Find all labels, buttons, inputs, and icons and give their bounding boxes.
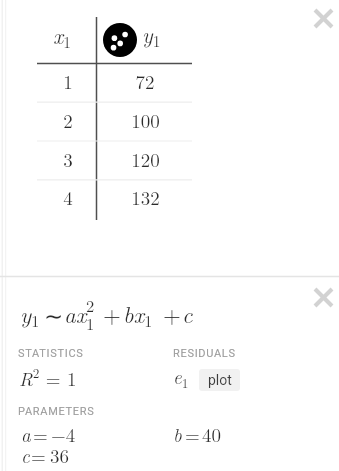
staticText: 72 (135, 68, 155, 95)
staticText: = (31, 442, 46, 469)
staticText: 120 (131, 146, 160, 173)
button[interactable]: plot (199, 369, 240, 391)
staticText: plot (208, 372, 232, 388)
button[interactable]: 4 (38, 178, 98, 216)
button[interactable]: 120 (97, 140, 193, 178)
button[interactable]: 100 (97, 101, 193, 139)
staticText: 2 (63, 107, 73, 134)
staticText: −4 (51, 421, 76, 448)
staticText: ∼ (44, 303, 64, 330)
staticText: bx1 (123, 297, 153, 332)
staticText: 1 (86, 311, 95, 334)
staticText: y1 (20, 297, 40, 332)
staticText: b (173, 421, 182, 448)
button[interactable]: 1 (38, 62, 98, 100)
button[interactable]: 132 (97, 178, 193, 216)
staticText: 40 (202, 421, 222, 448)
button[interactable]: 2 (38, 101, 98, 139)
button[interactable]: Close (307, 281, 339, 313)
staticText: = (33, 421, 48, 448)
button[interactable]: Point style for y1 (97, 18, 193, 63)
button[interactable]: x1 (37, 18, 96, 63)
staticText: 1 (63, 68, 73, 95)
staticText: = (185, 421, 200, 448)
staticText: c (182, 297, 193, 330)
staticText: 100 (131, 107, 160, 134)
button[interactable]: a (21, 421, 46, 448)
staticText: a (21, 421, 31, 448)
button[interactable]: b (173, 421, 193, 448)
staticText: x1 (53, 19, 71, 52)
staticText: y1 (142, 18, 161, 51)
button[interactable]: 72 (97, 62, 193, 100)
button[interactable]: c (21, 442, 41, 469)
staticText: ax (64, 297, 87, 330)
staticText: 4 (63, 184, 73, 211)
staticText: 132 (131, 184, 160, 211)
staticText: c (21, 442, 30, 469)
staticText: RESIDUALS (173, 347, 236, 360)
button[interactable]: Close (307, 2, 339, 34)
button[interactable]: 3 (38, 140, 98, 178)
staticText: + (103, 297, 121, 330)
staticText: 2 (86, 293, 95, 316)
staticText: PARAMETERS (18, 405, 95, 418)
staticText: 3 (63, 146, 73, 173)
staticText: + (163, 297, 181, 330)
staticText: e1 (173, 363, 189, 392)
staticText: STATISTICS (18, 347, 84, 360)
staticText: R2 = 1 (19, 363, 77, 391)
button[interactable]: y1 (14, 287, 200, 327)
staticText: 36 (50, 442, 70, 469)
